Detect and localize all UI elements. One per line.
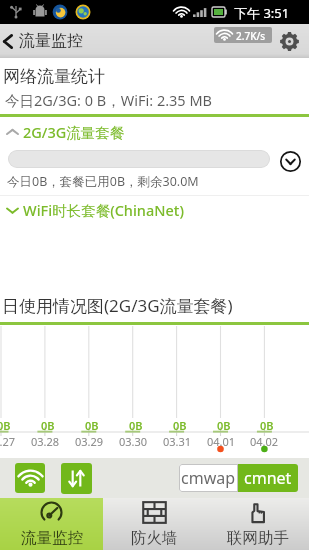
staticText: 03.27	[0, 434, 16, 449]
staticText: 0B	[41, 418, 55, 433]
staticText: 0B	[217, 418, 231, 433]
staticText: 03.30	[119, 434, 148, 449]
staticText: 下午 3:51	[234, 4, 290, 22]
button[interactable]: 流量监控	[0, 498, 103, 550]
staticText: 0B	[260, 418, 274, 433]
button[interactable]: cmwap	[179, 464, 238, 492]
button[interactable]: Expand details	[275, 146, 305, 176]
staticText: 03.28	[31, 434, 60, 449]
staticText: 04.02	[250, 434, 279, 449]
staticText: cmnet	[244, 467, 292, 489]
staticText: 03.29	[75, 434, 104, 449]
staticText: 03.31	[163, 434, 192, 449]
staticText: 防火墙	[131, 528, 178, 548]
staticText: 今日2G/3G: 0 B，WiFi: 2.35 MB	[5, 90, 213, 110]
staticText: 0B	[129, 418, 143, 433]
button[interactable]: 2G/3G流量套餐	[0, 121, 309, 143]
staticText: 今日0B，套餐已用0B，剩余30.0M	[7, 173, 199, 190]
button[interactable]: 防火墙	[103, 498, 206, 550]
staticText: 0B	[173, 418, 187, 433]
staticText: 流量监控	[21, 528, 83, 548]
staticText: 网络流量统计	[3, 66, 105, 87]
staticText: WiFi时长套餐(ChinaNet)	[23, 200, 184, 220]
button[interactable]: Settings	[272, 24, 309, 58]
staticText: 2G/3G流量套餐	[23, 122, 125, 142]
staticText: cmwap	[181, 467, 236, 489]
button[interactable]: 联网助手	[206, 498, 309, 550]
staticText: 日使用情况图(2G/3G流量套餐)	[2, 294, 233, 317]
button[interactable]: cmnet	[238, 464, 298, 492]
button[interactable]: Mobile data	[61, 463, 92, 494]
button[interactable]: Network speed	[214, 27, 272, 43]
button[interactable]: 流量监控	[0, 24, 91, 58]
staticText: 04.01	[207, 434, 236, 449]
staticText: 2.7K/s	[236, 29, 266, 43]
staticText: 联网助手	[227, 528, 289, 548]
staticText: 0B	[85, 418, 99, 433]
button[interactable]: WiFi时长套餐(ChinaNet)	[0, 199, 309, 221]
staticText: 0B	[0, 418, 11, 433]
button[interactable]: WiFi	[15, 463, 45, 493]
staticText: 流量监控	[19, 31, 83, 51]
